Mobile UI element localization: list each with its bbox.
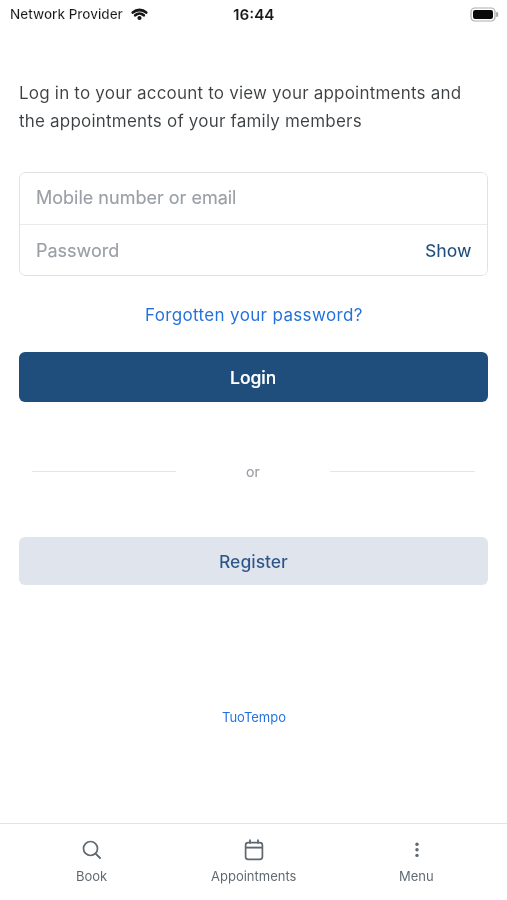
button[interactable]: Menu bbox=[332, 824, 501, 900]
staticText: Book bbox=[76, 868, 108, 884]
staticText: Login bbox=[230, 367, 277, 388]
button[interactable]: Mobile number or email bbox=[19, 172, 488, 224]
button[interactable]: Register bbox=[19, 537, 488, 585]
button[interactable]: Appointments bbox=[169, 824, 338, 900]
staticText: Appointments bbox=[211, 868, 297, 884]
button[interactable]: Book bbox=[7, 824, 176, 900]
staticText: 16:44 bbox=[233, 5, 275, 23]
button[interactable]: Forgotten your password? bbox=[145, 305, 363, 326]
staticText: Show bbox=[425, 240, 472, 261]
staticText: Mobile number or email bbox=[36, 187, 237, 209]
staticText: Log in to your account to view your appo… bbox=[19, 83, 462, 131]
button[interactable]: Password bbox=[19, 225, 488, 276]
button[interactable]: Login bbox=[19, 352, 488, 402]
button[interactable]: TuoTempo bbox=[222, 709, 286, 725]
staticText: or bbox=[246, 463, 260, 480]
staticText: Password bbox=[36, 240, 425, 262]
staticText: Menu bbox=[399, 868, 434, 884]
staticText: Register bbox=[219, 551, 288, 572]
staticText: Network Provider bbox=[10, 6, 123, 22]
